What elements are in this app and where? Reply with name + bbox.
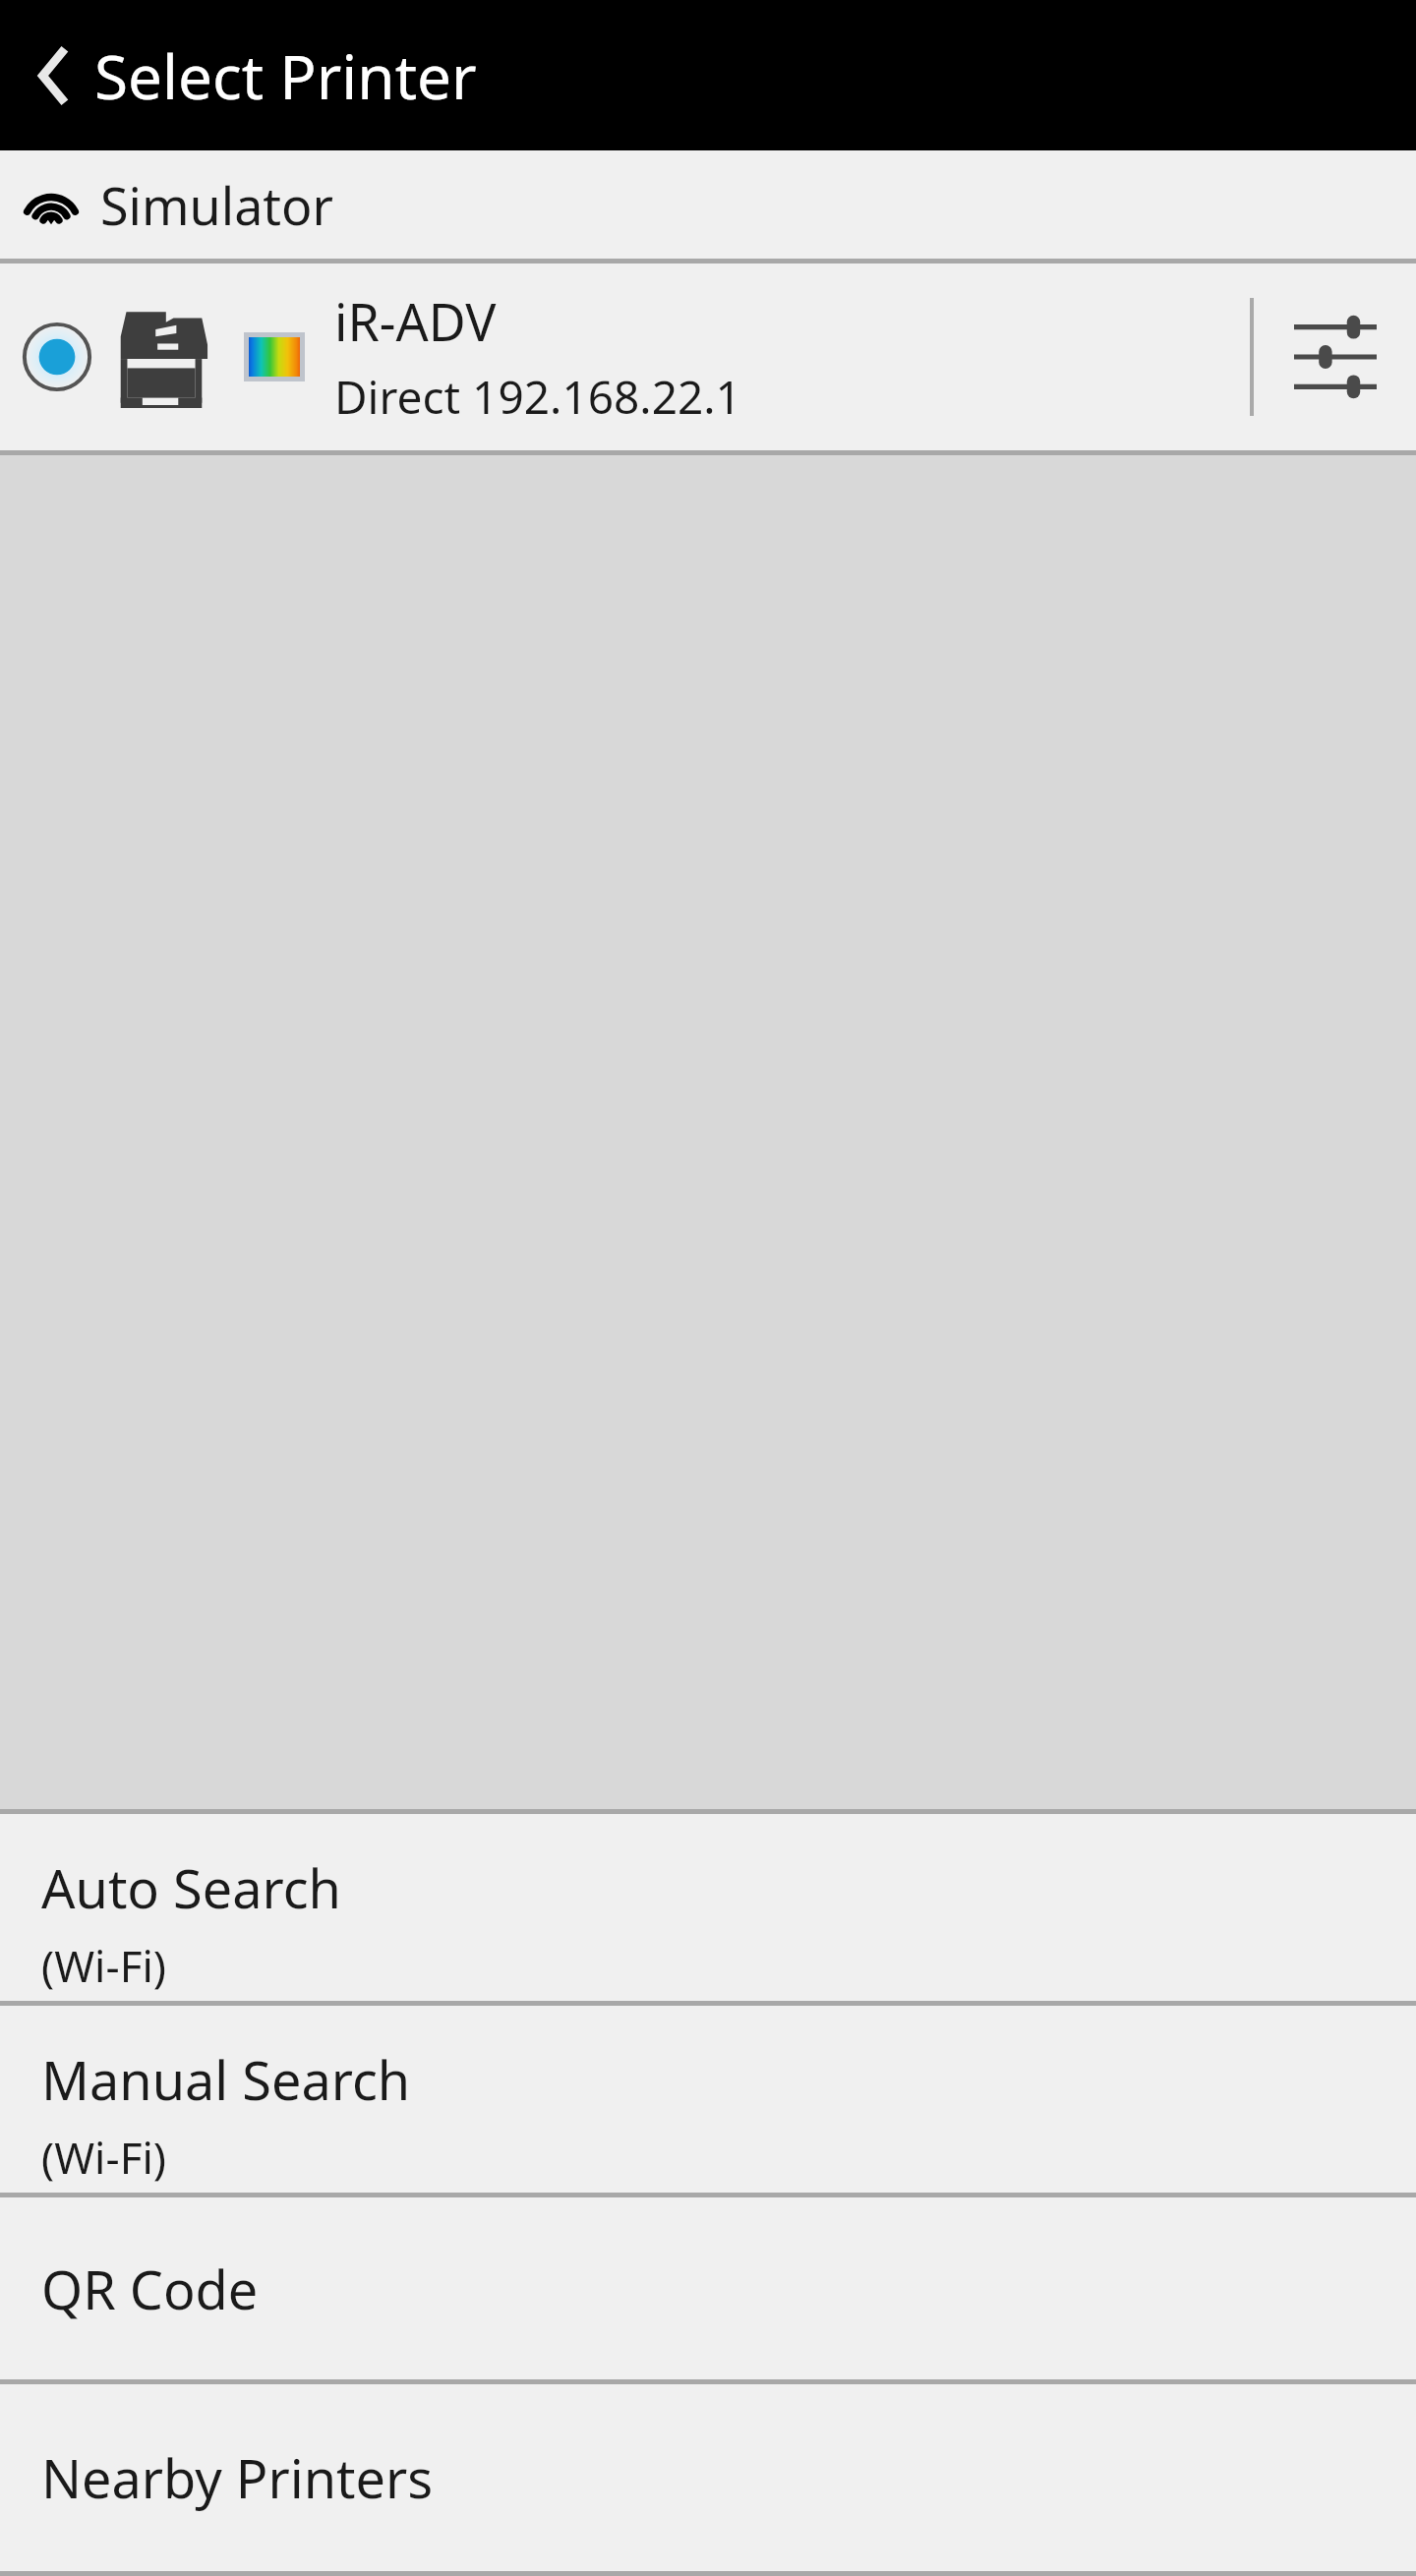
staticText: (Wi-Fi): [41, 2128, 167, 2187]
button[interactable]: Auto Search: [0, 1814, 1416, 2001]
button[interactable]: iR-ADV: [0, 263, 1250, 450]
button[interactable]: QR Code: [0, 2197, 1416, 2379]
staticText: QR Code: [41, 2253, 259, 2325]
staticText: (Wi-Fi): [41, 1936, 167, 1995]
button[interactable]: Printer settings: [1254, 263, 1416, 450]
button[interactable]: Back: [0, 0, 1416, 150]
button[interactable]: Nearby Printers: [0, 2384, 1416, 2571]
button[interactable]: Manual Search: [0, 2006, 1416, 2193]
staticText: Simulator: [100, 170, 334, 240]
staticText: Manual Search: [41, 2043, 411, 2116]
staticText: iR-ADV: [334, 286, 497, 356]
staticText: Direct 192.168.22.1: [334, 366, 741, 428]
staticText: Auto Search: [41, 1851, 341, 1924]
staticText: Select Printer: [94, 34, 477, 117]
staticText: Nearby Printers: [41, 2441, 434, 2514]
